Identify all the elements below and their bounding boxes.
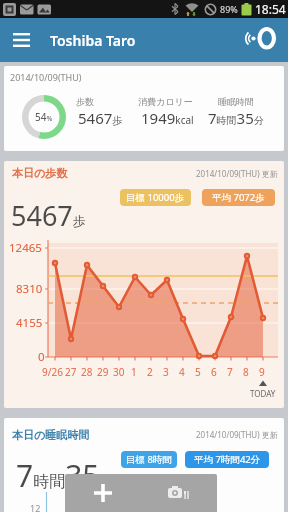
- button[interactable]: [238, 23, 272, 57]
- staticText: 5467歩: [78, 108, 123, 128]
- staticText: 18:54: [255, 1, 286, 17]
- staticText: 89%: [220, 3, 238, 15]
- staticText: 12: [30, 502, 41, 512]
- staticText: 4155: [16, 315, 43, 331]
- staticText: 平均 7時間42分: [194, 453, 261, 466]
- staticText: 12465: [9, 240, 42, 256]
- staticText: 1949kcal: [141, 108, 194, 128]
- staticText: 29: [97, 365, 109, 379]
- staticText: 本日の歩数: [12, 166, 68, 180]
- button[interactable]: 目標 8時間: [121, 451, 177, 468]
- staticText: 7: [227, 365, 233, 379]
- button[interactable]: [8, 27, 34, 53]
- staticText: 2: [147, 365, 153, 379]
- staticText: 54%: [35, 110, 53, 124]
- button[interactable]: 本日の歩数: [4, 161, 284, 408]
- staticText: 7時間35分: [208, 108, 264, 128]
- button[interactable]: 本日の睡眠時間: [4, 418, 284, 512]
- staticText: 0: [38, 349, 45, 365]
- staticText: 9: [259, 365, 265, 379]
- staticText: 2014/10/09(THU) 更新: [196, 168, 278, 179]
- staticText: 8310: [16, 281, 43, 297]
- staticText: 9/26: [42, 365, 63, 379]
- staticText: 目標 8時間: [126, 453, 172, 466]
- staticText: 3: [163, 365, 169, 379]
- staticText: TODAY: [250, 388, 276, 399]
- button[interactable]: 目標 10000歩: [120, 189, 191, 206]
- staticText: 本日の睡眠時間: [12, 428, 90, 442]
- staticText: 歩数: [76, 96, 94, 107]
- staticText: 睡眠時間: [218, 96, 254, 107]
- button[interactable]: 平均 7時間42分: [185, 451, 269, 468]
- staticText: 2014/10/09(THU): [10, 71, 82, 83]
- staticText: 4: [179, 365, 185, 379]
- staticText: 5467歩: [11, 197, 86, 234]
- staticText: 8: [243, 365, 249, 379]
- staticText: 7時間35分: [16, 455, 116, 496]
- staticText: 消費カロリー: [138, 96, 193, 107]
- staticText: 平均 7072歩: [212, 191, 265, 204]
- button[interactable]: 2014/10/09(THU): [4, 66, 284, 151]
- staticText: Toshiba Taro: [50, 31, 136, 50]
- staticText: 6: [211, 365, 217, 379]
- staticText: 2014/10/09(THU) 更新: [196, 429, 278, 440]
- button[interactable]: 平均 7072歩: [202, 189, 275, 206]
- staticText: 27: [65, 365, 77, 379]
- staticText: 28: [81, 365, 93, 379]
- button[interactable]: [65, 474, 141, 512]
- staticText: 目標 10000歩: [126, 191, 185, 204]
- button[interactable]: [141, 474, 217, 512]
- staticText: 1: [131, 365, 137, 379]
- staticText: 30: [113, 365, 125, 379]
- staticText: 5: [195, 365, 201, 379]
